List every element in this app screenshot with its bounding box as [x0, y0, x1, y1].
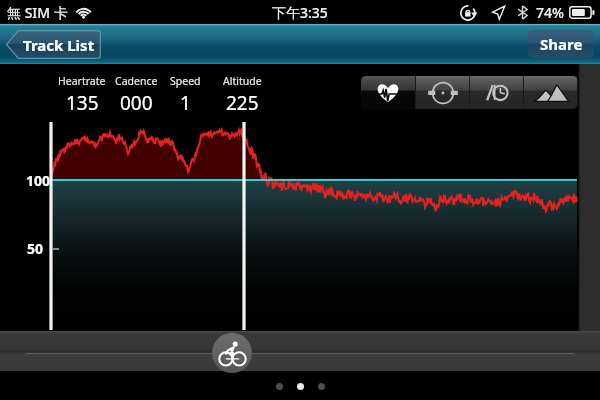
staticText: 50: [27, 239, 44, 258]
staticText: Speed: [170, 74, 201, 88]
staticText: Heartrate: [58, 74, 106, 88]
staticText: 135: [66, 90, 99, 116]
staticText: 225: [226, 90, 259, 116]
staticText: Altitude: [223, 74, 262, 88]
staticText: Cadence: [115, 74, 158, 88]
button[interactable]: Position marker: [212, 333, 252, 373]
button[interactable]: Track List: [5, 30, 101, 59]
button[interactable]: Speed: [470, 76, 523, 109]
staticText: 1: [180, 90, 191, 116]
staticText: Track List: [23, 35, 95, 55]
staticText: 000: [120, 90, 153, 116]
staticText: 100: [26, 171, 51, 190]
staticText: 74%: [536, 3, 564, 22]
button[interactable]: Heartrate: [361, 76, 415, 109]
button[interactable]: Altitude: [524, 76, 577, 109]
staticText: 下午3:35: [272, 3, 328, 22]
button[interactable]: Share: [528, 30, 594, 58]
staticText: 無 SIM 卡: [7, 3, 68, 22]
staticText: Share: [540, 34, 583, 54]
button[interactable]: Cadence: [416, 76, 469, 109]
